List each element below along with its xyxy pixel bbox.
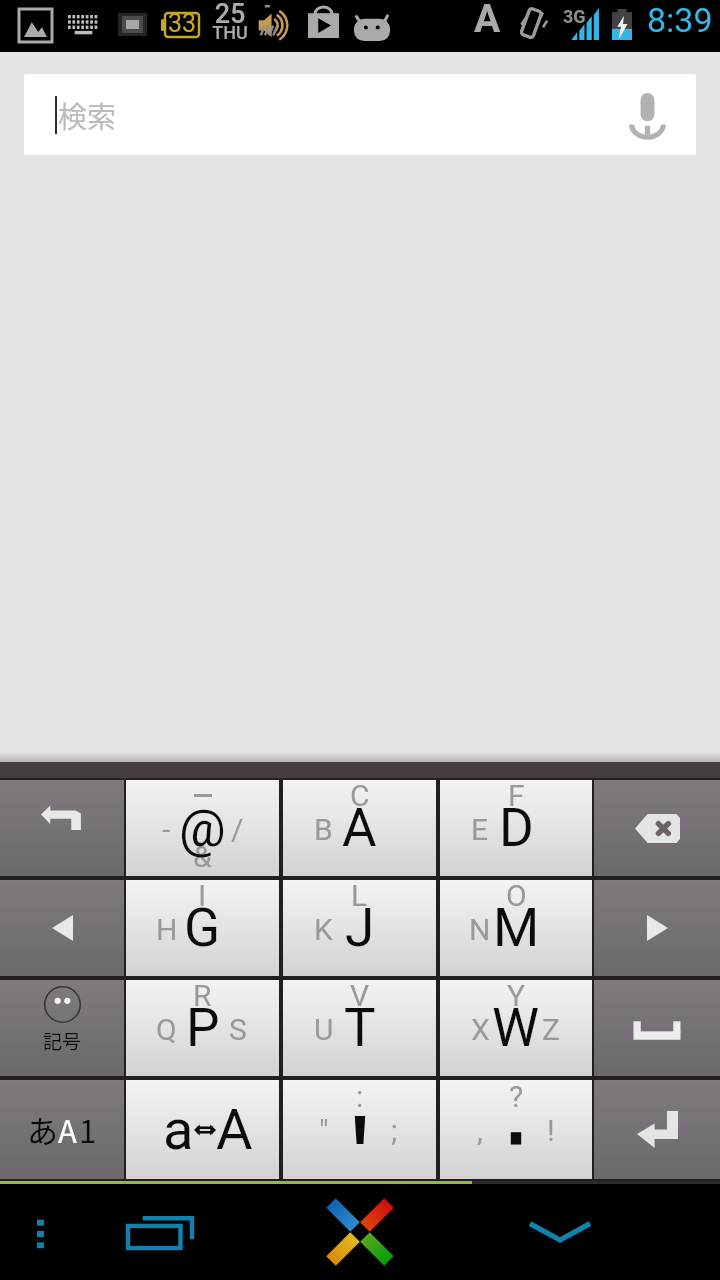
button[interactable]: Space (594, 978, 720, 1078)
staticText: Q (156, 1012, 177, 1047)
staticText: " (319, 1113, 329, 1148)
button[interactable]: Symbols (0, 978, 124, 1078)
staticText: L (351, 878, 368, 913)
button[interactable]: ? (438, 1078, 594, 1181)
staticText: @ (179, 798, 226, 859)
staticText: A (58, 1107, 77, 1152)
staticText: / (231, 812, 244, 847)
button[interactable]: I (124, 878, 281, 978)
button[interactable]: Input mode (0, 1078, 124, 1181)
staticText: V (350, 978, 370, 1013)
staticText: : (356, 1079, 364, 1114)
staticText: G (184, 897, 221, 959)
staticText: O (506, 878, 527, 913)
staticText: THU (207, 22, 253, 43)
button[interactable]: Y (438, 978, 594, 1078)
staticText: D (499, 797, 534, 859)
button[interactable]: F (438, 778, 594, 878)
staticText: F (508, 778, 525, 813)
staticText: N (469, 912, 491, 947)
button[interactable]: Enter (594, 1078, 720, 1181)
button[interactable]: Undo (0, 778, 124, 878)
staticText: M (493, 897, 540, 959)
staticText: 1 (79, 1107, 97, 1152)
staticText: I (198, 878, 207, 913)
staticText: a (163, 1097, 194, 1163)
staticText: ! (547, 1113, 555, 1148)
button[interactable]: Menu (0, 1184, 84, 1280)
staticText: J (345, 897, 375, 959)
button[interactable]: 検索 (24, 74, 696, 155)
button[interactable]: Move cursor right (594, 878, 720, 978)
staticText: E (471, 812, 489, 847)
button[interactable]: V (281, 978, 438, 1078)
button[interactable]: C (281, 778, 438, 878)
staticText: S (229, 1012, 247, 1047)
staticText: W (492, 997, 540, 1059)
staticText: - (162, 812, 171, 847)
button[interactable]: a (124, 1078, 281, 1181)
button[interactable]: Backspace (594, 778, 720, 878)
staticText: T (344, 997, 376, 1059)
button[interactable]: R (124, 978, 281, 1078)
staticText: A (342, 797, 377, 859)
staticText: K (314, 912, 333, 947)
button[interactable]: O (438, 878, 594, 978)
staticText: A (474, 0, 501, 42)
staticText: U (314, 1012, 334, 1047)
button[interactable]: Home (310, 1184, 410, 1280)
staticText: 記号 (43, 1027, 82, 1055)
staticText: 25 (212, 0, 248, 30)
staticText: B (314, 812, 333, 847)
staticText: X (471, 1012, 490, 1047)
staticText: Y (507, 978, 526, 1013)
staticText: H (156, 912, 178, 947)
button[interactable]: Voice search (611, 79, 683, 151)
staticText: Z (542, 1012, 560, 1047)
button[interactable]: Hide keyboard (515, 1184, 605, 1280)
staticText: A (216, 1097, 253, 1163)
staticText: 3G (563, 6, 586, 27)
staticText: あ (27, 1107, 58, 1152)
staticText: & (193, 839, 212, 874)
staticText: 8:39 (647, 0, 713, 40)
staticText: ? (509, 1079, 524, 1114)
staticText: R (193, 978, 212, 1013)
staticText: P (186, 997, 220, 1059)
button[interactable]: L (281, 878, 438, 978)
staticText: C (350, 778, 370, 813)
staticText: , (477, 1113, 483, 1148)
button[interactable]: Recent apps (110, 1184, 210, 1280)
staticText: 33 (166, 9, 198, 38)
staticText: ; (391, 1113, 398, 1148)
button[interactable]: & (124, 778, 281, 878)
staticText: 検索 (58, 94, 117, 136)
button[interactable]: Move cursor left (0, 878, 124, 978)
button[interactable]: : (281, 1078, 438, 1181)
